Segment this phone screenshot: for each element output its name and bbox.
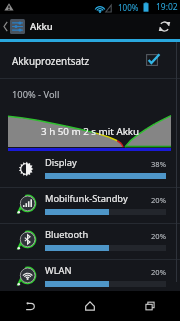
- staticText: WLAN: [45, 264, 72, 277]
- staticText: 20%: [151, 195, 166, 205]
- staticText: Mobilfunk-Standby: [45, 192, 128, 205]
- button[interactable]: Display: [0, 152, 180, 188]
- staticText: Display: [45, 156, 77, 169]
- staticText: 20%: [151, 267, 166, 277]
- button[interactable]: WLAN: [0, 260, 180, 291]
- staticText: 3 h 50 m 2 s mit Akku: [41, 125, 140, 138]
- button[interactable]: Recent apps: [120, 291, 180, 321]
- staticText: 19:02: [156, 1, 178, 13]
- button[interactable]: Home: [60, 291, 120, 321]
- staticText: 100%: [118, 2, 139, 13]
- button[interactable]: Akkuprozentsatz: [0, 42, 180, 78]
- staticText: 38%: [151, 159, 166, 169]
- button[interactable]: Bluetooth: [0, 224, 180, 260]
- staticText: Akkuprozentsatz: [12, 54, 90, 67]
- button[interactable]: Back: [0, 291, 60, 321]
- button[interactable]: Mobilfunk-Standby: [0, 188, 180, 224]
- staticText: 20%: [151, 231, 166, 241]
- staticText: Akku: [30, 20, 53, 33]
- button[interactable]: Refresh: [152, 14, 177, 39]
- staticText: Bluetooth: [45, 228, 89, 241]
- button[interactable]: Navigate up: [0, 14, 25, 39]
- staticText: 100% - Voll: [12, 88, 60, 101]
